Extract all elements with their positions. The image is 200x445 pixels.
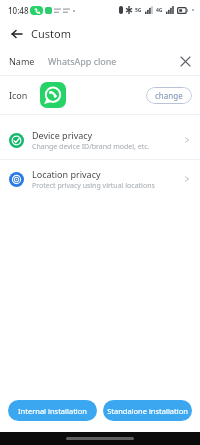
staticText: Custom: [31, 26, 71, 41]
staticText: 4G: [156, 7, 163, 14]
button[interactable]: Internal installation: [8, 400, 97, 421]
staticText: Standalone installation: [107, 406, 188, 416]
button[interactable]: Device privacy: [0, 121, 200, 159]
staticText: Name: [9, 55, 35, 67]
button[interactable]: App icon: [40, 82, 66, 108]
button[interactable]: change: [146, 87, 192, 104]
staticText: Internal installation: [18, 406, 87, 416]
button[interactable]: Back: [6, 23, 28, 45]
button[interactable]: Location privacy: [0, 160, 200, 198]
staticText: Icon: [9, 89, 28, 101]
staticText: 5G: [135, 7, 142, 14]
staticText: 10:48: [8, 5, 29, 16]
staticText: Protect privacy using virtual locations: [32, 181, 155, 191]
staticText: Device privacy: [32, 129, 93, 141]
staticText: Location privacy: [32, 168, 101, 180]
button[interactable]: Name: [0, 47, 200, 75]
button[interactable]: Clear name: [176, 52, 194, 70]
staticText: Change device ID/brand model, etc.: [32, 142, 150, 152]
staticText: WhatsApp clone: [48, 55, 117, 67]
button[interactable]: Standalone installation: [103, 400, 192, 421]
staticText: change: [155, 90, 183, 101]
